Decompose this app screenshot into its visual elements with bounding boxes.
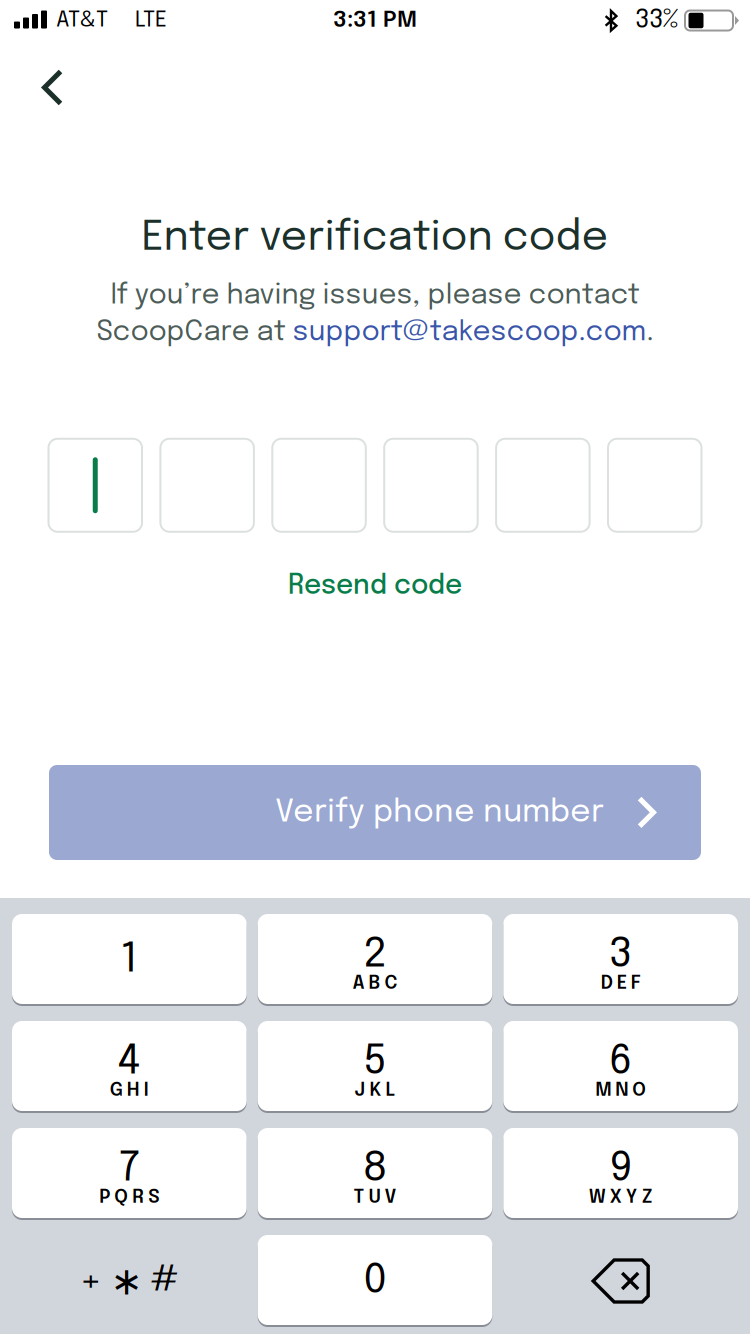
button[interactable]: 1 [12,914,247,1006]
staticText: 6 [609,1041,633,1083]
staticText: LTE [135,9,167,32]
staticText: 0 [363,1260,386,1302]
staticText: P Q R S [99,1188,159,1207]
staticText: 1 [121,939,138,981]
staticText: ∗ [110,1258,142,1303]
staticText: support@takescoop.com [292,318,646,347]
staticText: 9 [609,1148,632,1190]
staticText: . [646,318,653,347]
button[interactable]: 2 [258,914,492,1006]
button[interactable]: 6 [503,1021,738,1113]
staticText: Verify phone number [275,796,604,829]
staticText: 3 [609,934,633,976]
staticText: Resend code [288,573,462,600]
staticText: # [150,1263,179,1299]
staticText: 5 [363,1041,386,1083]
staticText: ScoopCare at [96,318,292,347]
staticText: Enter verification code [141,217,608,259]
button[interactable]: 9 [503,1128,738,1220]
button[interactable]: 3 [503,914,738,1006]
staticText: 7 [119,1148,140,1190]
button[interactable]: Delete [503,1235,738,1327]
staticText: 4 [118,1041,141,1083]
button[interactable]: 7 [12,1128,247,1220]
staticText: T U V [353,1188,396,1207]
button[interactable]: 4 [12,1021,247,1113]
staticText: M N O [595,1081,646,1100]
staticText: 33% [635,7,678,33]
staticText: + [79,1261,102,1301]
staticText: If you’re having issues, please contact [110,281,639,310]
button[interactable]: Verify phone number [49,765,701,860]
staticText: 8 [362,1148,387,1190]
staticText: 3:31 PM [333,9,417,32]
staticText: W X Y Z [589,1188,653,1207]
button[interactable]: Symbols [12,1235,247,1327]
button[interactable]: 0 [258,1235,492,1327]
staticText: A B C [352,974,397,993]
staticText: J K L [354,1081,395,1100]
button[interactable]: Back [0,41,89,126]
staticText: G H I [110,1081,149,1100]
button[interactable]: 8 [258,1128,492,1220]
staticText: 2 [363,934,386,976]
staticText: D E F [601,974,641,993]
button[interactable]: Resend code [264,561,486,612]
button[interactable]: 5 [258,1021,492,1113]
staticText: AT&T [56,9,108,32]
